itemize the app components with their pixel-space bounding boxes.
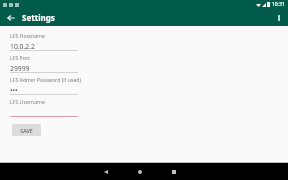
staticText: Settings [22,12,55,23]
button[interactable]: More options [272,11,285,24]
button[interactable]: LFS Admin Password (if used) [0,73,288,95]
button[interactable]: Back [98,164,114,180]
staticText: LFS Admin Password (if used) [10,76,82,83]
button[interactable]: LFS Hostname [0,29,288,51]
button[interactable]: Navigate up [4,11,17,24]
button[interactable]: SAVE [12,124,41,136]
button[interactable]: LFS Username [0,95,288,117]
staticText: LFS Username [10,98,45,105]
staticText: 10.0.2.2 [10,42,35,50]
button[interactable]: LFS Port [0,51,288,73]
staticText: LFS Port [10,54,30,61]
staticText: 29999 [10,64,30,72]
button[interactable]: Home [132,164,148,180]
button[interactable]: Recent apps [166,164,182,180]
staticText: 10:31 [272,1,285,8]
staticText: SAVE [20,127,33,134]
staticText: LFS Hostname [10,32,45,39]
staticText: ••• [10,86,18,94]
